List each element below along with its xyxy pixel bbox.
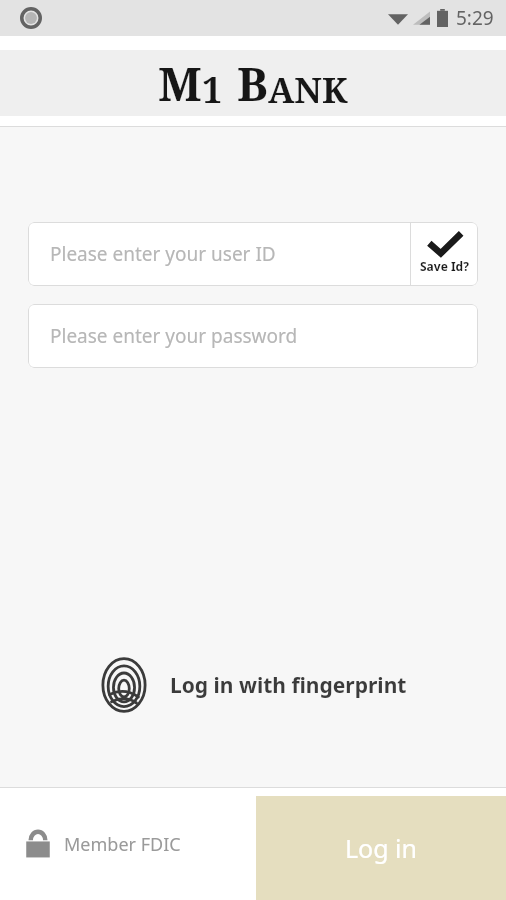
- staticText: B: [237, 52, 268, 115]
- staticText: Member FDIC: [64, 832, 181, 857]
- button[interactable]: Please enter your user ID: [28, 222, 410, 286]
- button[interactable]: Member FDIC: [24, 828, 181, 860]
- button[interactable]: Log in with fingerprint: [0, 648, 506, 722]
- staticText: Log in with fingerprint: [170, 671, 407, 700]
- button[interactable]: Please enter your password: [28, 304, 478, 368]
- staticText: Please enter your user ID: [50, 241, 276, 267]
- button[interactable]: Log in: [256, 796, 506, 900]
- staticText: M: [158, 52, 202, 115]
- staticText: 5:29: [456, 5, 494, 31]
- staticText: 1: [202, 65, 223, 114]
- staticText: Please enter your password: [50, 323, 298, 349]
- staticText: ANK: [268, 66, 348, 114]
- staticText: Save Id?: [420, 258, 469, 274]
- button[interactable]: Save Id: [411, 222, 478, 286]
- staticText: Log in: [345, 831, 418, 865]
